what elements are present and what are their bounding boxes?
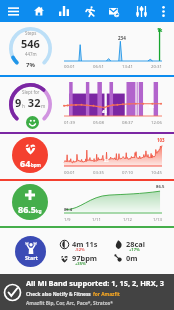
staticText: bpm [31, 162, 41, 168]
staticText: -52% [75, 247, 85, 253]
staticText: All Mi Band supported: 1, 1S, 2, HRX, 3 [26, 278, 164, 288]
staticText: 85.4 [64, 207, 72, 212]
button[interactable]: Messages [103, 0, 125, 22]
button[interactable]: Slept for [0, 77, 174, 132]
staticText: 1/9 [64, 216, 71, 222]
button[interactable]: Start [0, 228, 60, 274]
staticText: 86.5 [18, 203, 36, 215]
button[interactable]: 97bpm [60, 253, 114, 263]
staticText: kg [36, 208, 42, 214]
staticText: 64 [20, 157, 31, 169]
staticText: 10:45 [151, 169, 162, 175]
staticText: Slept for [22, 89, 40, 95]
button[interactable]: Menu [2, 0, 24, 22]
staticText: Start [25, 254, 38, 261]
staticText: 01:39 [64, 119, 75, 125]
staticText: 45 [102, 109, 107, 115]
staticText: 06:51 [93, 63, 104, 69]
staticText: 08:37 [122, 119, 133, 125]
button[interactable]: Home [28, 0, 50, 22]
button[interactable]: 4m 11s [60, 239, 114, 249]
staticText: 4m 11s [72, 239, 98, 249]
staticText: 234 [118, 35, 126, 41]
staticText: 45 [104, 158, 109, 164]
staticText: 28cal [126, 239, 145, 249]
staticText: 447m [25, 51, 37, 57]
staticText: +35% [75, 261, 86, 267]
staticText: 64 [149, 104, 154, 110]
staticText: 20:31 [151, 63, 162, 69]
staticText: 9 [15, 95, 22, 110]
staticText: 03:35 [93, 169, 104, 175]
staticText: +17% [129, 247, 140, 253]
staticText: 1/11 [92, 216, 101, 222]
staticText: 546 [21, 36, 40, 51]
staticText: 1k [157, 27, 163, 33]
staticText: 12:06 [151, 119, 162, 125]
staticText: 13:41 [122, 63, 133, 69]
staticText: Steps [25, 30, 37, 36]
staticText: for Amazfit [93, 291, 120, 298]
staticText: Amazfit Bip, Cor, Arc, Pace*, Stratos* [26, 300, 113, 307]
staticText: 7% [26, 61, 35, 69]
button[interactable]: All Mi Band supported: 1, 1S, 2, HRX, 3 [0, 274, 174, 310]
staticText: 103 [157, 137, 165, 143]
button[interactable]: Steps [0, 22, 174, 75]
button[interactable]: More options [152, 0, 174, 22]
button[interactable]: 0m [114, 253, 168, 263]
staticText: 00:01 [64, 63, 75, 69]
button[interactable]: Settings [130, 0, 152, 22]
staticText: 1/12 [123, 216, 132, 222]
button[interactable]: 28cal [114, 239, 168, 249]
staticText: 97bpm [72, 253, 98, 263]
staticText: 05:08 [93, 119, 104, 125]
staticText: 1/13 [153, 216, 162, 222]
button[interactable]: 64 [0, 134, 174, 179]
staticText: Check also Notify & Fitness [26, 291, 93, 298]
button[interactable]: Statistics [53, 0, 75, 22]
staticText: h [22, 103, 25, 109]
staticText: 0m [126, 253, 138, 263]
button[interactable]: 86.5 [0, 181, 174, 226]
staticText: 07:10 [122, 169, 133, 175]
staticText: 32 [25, 95, 41, 110]
staticText: m [41, 103, 46, 109]
staticText: 86.5 [156, 184, 165, 190]
staticText: 00:01 [64, 169, 75, 175]
button[interactable]: Workout [79, 0, 101, 22]
